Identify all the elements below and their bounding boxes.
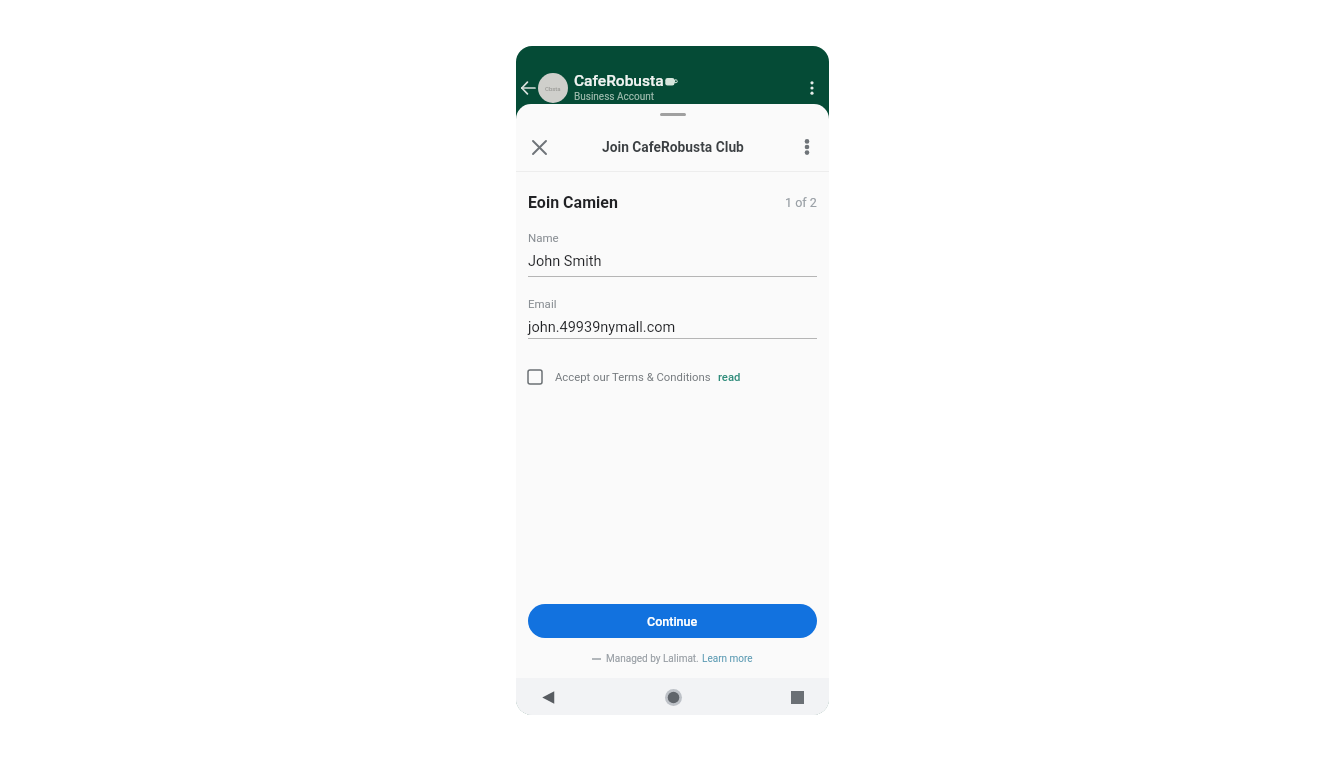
staticText: Eoin Camien: [528, 193, 618, 212]
button[interactable]: Back: [535, 684, 561, 710]
staticText: Continue: [647, 614, 698, 629]
button[interactable]: Home: [660, 684, 686, 710]
button[interactable]: Continue: [528, 604, 817, 638]
staticText: Join CafeRobusta Club: [602, 139, 744, 155]
staticText: john.49939nymall.com: [528, 319, 676, 336]
staticText: 1 of 2: [785, 195, 817, 210]
button[interactable]: Close: [526, 134, 552, 160]
button[interactable]: Accept our Terms & Conditions: [528, 370, 817, 384]
staticText: John Smith: [528, 253, 602, 270]
staticText: Accept our Terms & Conditions: [555, 371, 711, 384]
staticText: Business Account: [574, 91, 654, 103]
staticText: Name: [528, 231, 559, 244]
staticText: Managed by Lalimat.: [606, 653, 702, 665]
staticText: CafeRobusta: [574, 72, 664, 90]
button[interactable]: Back: [517, 77, 539, 99]
staticText: read: [718, 371, 741, 384]
button[interactable]: Cbsta: [538, 66, 783, 110]
staticText: Cbsta: [545, 85, 561, 92]
button[interactable]: More options: [801, 77, 823, 99]
staticText: Email: [528, 297, 557, 310]
button[interactable]: Recent apps: [784, 684, 810, 710]
button[interactable]: More options: [794, 134, 820, 160]
button[interactable]: Learn more: [702, 653, 753, 665]
